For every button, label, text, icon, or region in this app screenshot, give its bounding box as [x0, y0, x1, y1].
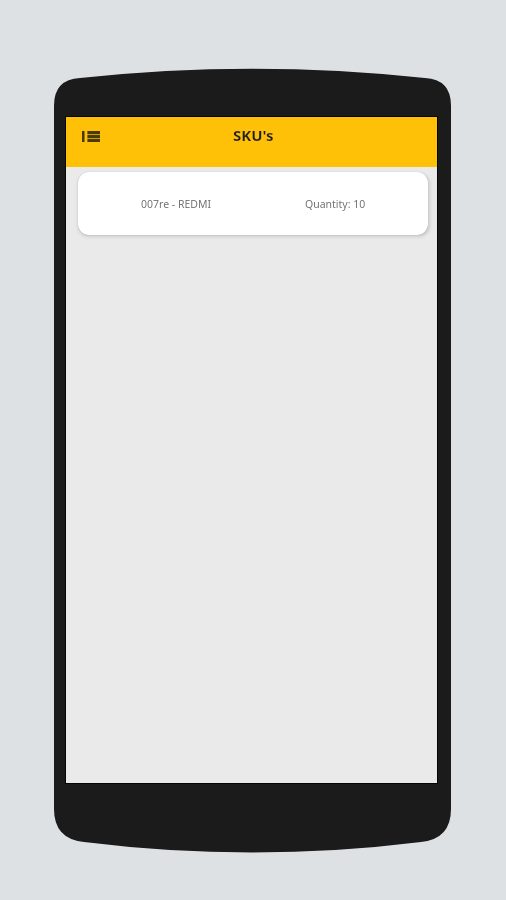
staticText: SKU's: [233, 125, 274, 145]
button[interactable]: Open navigation menu: [76, 121, 106, 151]
staticText: 007re - REDMI: [141, 197, 212, 211]
staticText: Quantity: 10: [305, 197, 366, 211]
button[interactable]: 007re - REDMI: [78, 172, 428, 235]
